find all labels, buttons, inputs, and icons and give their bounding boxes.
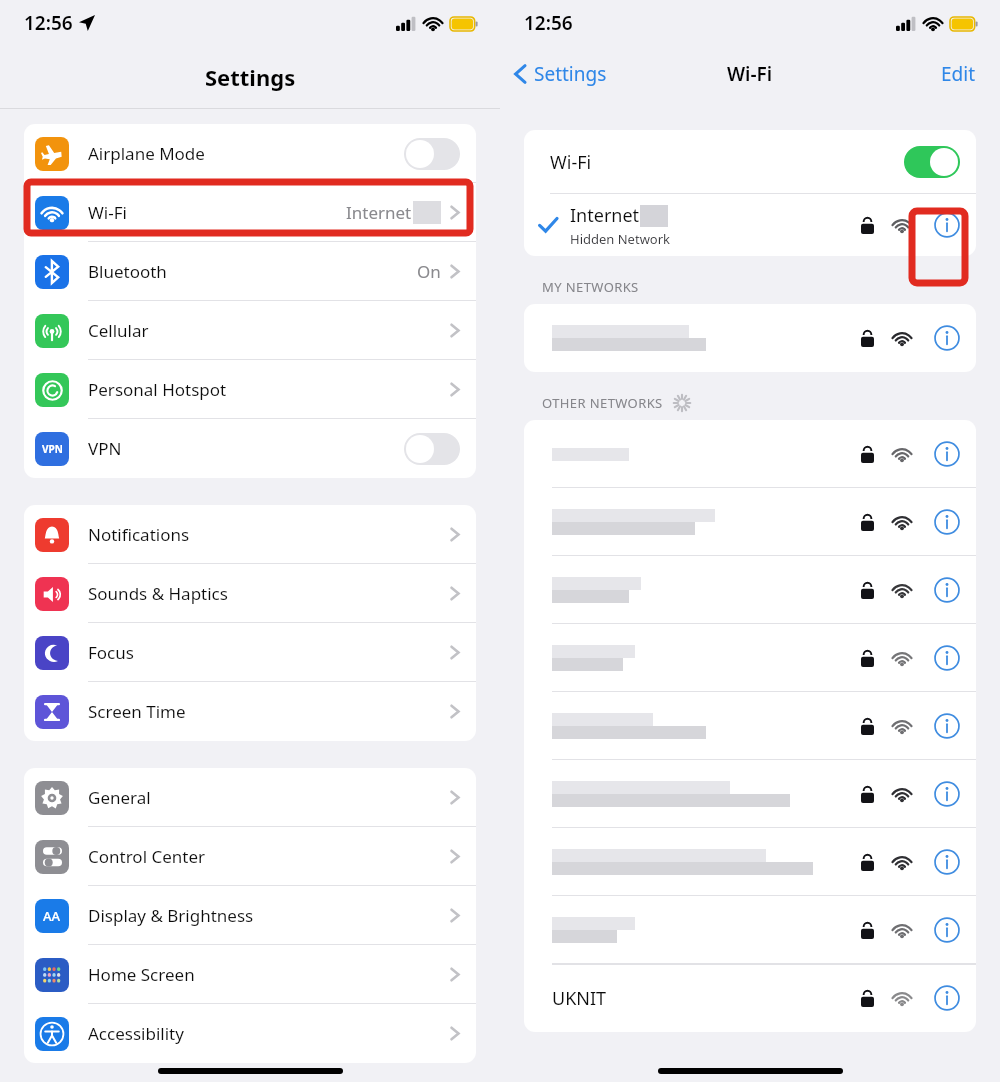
button[interactable]: Wi-Fi [24,183,476,242]
staticText: 12:56 [524,10,573,36]
staticText: General [88,786,151,809]
staticText: Notifications [88,523,190,546]
button[interactable]: Notifications [24,505,476,564]
button[interactable]: VPN [24,419,476,478]
staticText: Accessibility [88,1022,184,1045]
button[interactable]: Network information [934,849,960,875]
staticText: Bluetooth [88,260,167,283]
button[interactable]: Network information [934,325,960,351]
button[interactable]: Bluetooth [24,242,476,301]
staticText: Sounds & Haptics [88,582,228,605]
staticText: Wi-Fi [550,150,592,175]
button[interactable]: Accessibility [24,1004,476,1063]
staticText: Settings [205,62,296,92]
staticText: On [417,260,441,283]
staticText: Focus [88,641,134,664]
button[interactable]: Network information [934,713,960,739]
button[interactable]: Network information [524,760,976,828]
staticText: MY NETWORKS [542,278,639,296]
staticText: Wi-Fi [88,201,127,224]
staticText: AA [43,907,61,925]
button[interactable]: Network information [524,624,976,692]
staticText: Settings [534,61,607,87]
staticText: VPN [42,442,63,456]
button[interactable]: General [24,768,476,827]
button[interactable]: Personal Hotspot [24,360,476,419]
staticText: Home Screen [88,963,195,986]
button[interactable]: Sounds & Haptics [24,564,476,623]
button[interactable]: AA [24,886,476,945]
button[interactable]: Toggle off [404,433,460,465]
staticText: Airplane Mode [88,142,205,165]
staticText: Edit [941,61,976,87]
button[interactable]: Cellular [24,301,476,360]
staticText: Internet [346,201,412,224]
button[interactable]: Edit [941,61,976,87]
button[interactable]: Network information [934,645,960,671]
staticText: Screen Time [88,700,186,723]
button[interactable]: Network information [934,781,960,807]
staticText: Internet [570,203,640,228]
button[interactable]: Focus [24,623,476,682]
staticText: VPN [88,437,122,460]
button[interactable]: Screen Time [24,682,476,741]
button[interactable]: Toggle on [904,146,960,178]
button[interactable]: Network information [524,304,976,372]
staticText: Wi-Fi [727,61,773,87]
staticText: OTHER NETWORKS [542,394,663,412]
button[interactable]: Network information [934,985,960,1011]
staticText: 12:56 [24,10,73,36]
button[interactable]: Network information [934,509,960,535]
button[interactable]: Network information [524,828,976,896]
button[interactable]: Wi-Fi [524,130,976,194]
staticText: Display & Brightness [88,904,254,927]
button[interactable]: Airplane Mode [24,124,476,183]
button[interactable]: Control Center [24,827,476,886]
button[interactable]: Network information [524,420,976,488]
button[interactable]: Network information [934,441,960,467]
button[interactable]: Network information [934,212,960,238]
staticText: Control Center [88,845,206,868]
button[interactable]: Toggle off [404,138,460,170]
button[interactable]: Home Screen [24,945,476,1004]
button[interactable]: Network information [524,896,976,964]
staticText: UKNIT [552,986,607,1011]
staticText: Hidden Network [570,230,671,248]
button[interactable]: Network information [524,692,976,760]
button[interactable]: UKNIT [524,964,976,1032]
button[interactable]: Network information [524,488,976,556]
button[interactable]: Network information [934,577,960,603]
button[interactable]: Internet [524,194,976,256]
button[interactable]: Network information [934,917,960,943]
button[interactable]: Network information [524,556,976,624]
staticText: Cellular [88,319,149,342]
staticText: Personal Hotspot [88,378,227,401]
button[interactable]: Settings [514,61,607,87]
